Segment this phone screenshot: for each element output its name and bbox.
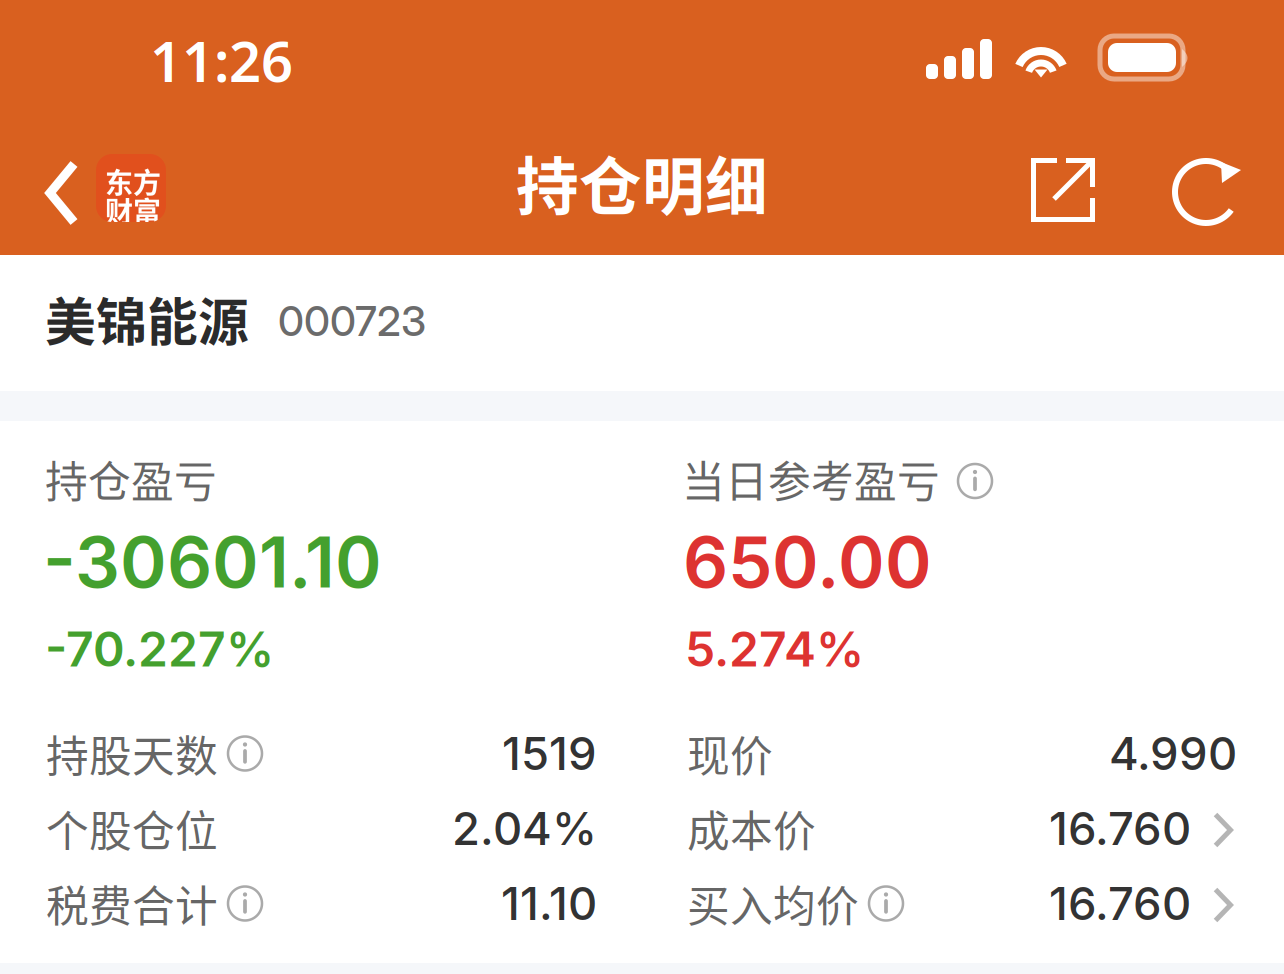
staticText: 11:26 — [150, 23, 293, 97]
staticText: -70.227% — [45, 620, 274, 678]
button[interactable]: 现价 — [687, 716, 1237, 791]
staticText: 财 — [105, 190, 133, 230]
staticText: 美锦能源 — [45, 282, 249, 355]
button[interactable]: 成本价 — [687, 791, 1237, 866]
staticText: 16.760 — [1049, 876, 1191, 931]
staticText: 个股仓位 — [46, 798, 218, 859]
staticText: 方 — [133, 161, 161, 201]
staticText: 000723 — [278, 296, 426, 346]
staticText: 成本价 — [687, 798, 816, 859]
staticText: 持仓明细 — [516, 137, 768, 227]
button[interactable]: 买入均价 — [687, 866, 1237, 941]
staticText: 2.04% — [452, 801, 597, 856]
staticText: 现价 — [687, 723, 773, 784]
staticText: -30601.10 — [43, 519, 382, 604]
staticText: 1519 — [502, 726, 597, 781]
staticText: 16.760 — [1049, 801, 1191, 856]
staticText: 税费合计 — [46, 873, 218, 934]
staticText: 富 — [133, 190, 161, 230]
staticText: 持仓盈亏 — [45, 448, 217, 510]
staticText: 5.274% — [685, 620, 864, 678]
staticText: 东 — [105, 161, 133, 201]
button[interactable]: 持股天数 — [46, 716, 597, 791]
staticText: 持股天数 — [46, 723, 218, 784]
staticText: 650.00 — [683, 519, 932, 604]
button[interactable]: Back — [31, 131, 191, 255]
button[interactable]: 税费合计 — [46, 866, 597, 941]
button[interactable]: Share — [1002, 131, 1126, 255]
button[interactable]: 个股仓位 — [46, 791, 597, 866]
staticText: 4.990 — [1109, 726, 1237, 781]
button[interactable]: Refresh — [1148, 131, 1272, 255]
staticText: 当日参考盈亏 — [682, 448, 940, 510]
staticText: 买入均价 — [687, 873, 859, 934]
staticText: 11.10 — [501, 876, 597, 931]
